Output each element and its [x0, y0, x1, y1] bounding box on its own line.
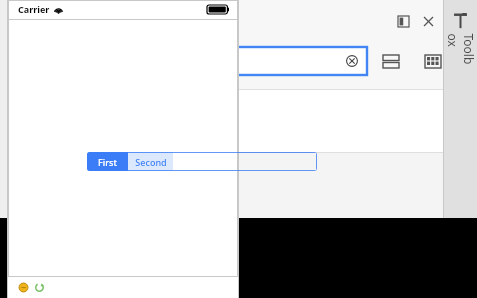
staticText: Carrier: [18, 3, 50, 15]
button[interactable]: Toolbox: [444, 0, 477, 218]
button[interactable]: Warnings: [17, 281, 29, 293]
button[interactable]: First: [87, 152, 128, 171]
button[interactable]: List view: [380, 50, 402, 72]
button[interactable]: Refresh: [33, 281, 45, 293]
staticText: Toolbox: [444, 33, 476, 66]
button[interactable]: Toggle panel: [395, 13, 411, 29]
button[interactable]: Clear search: [201, 47, 367, 75]
button[interactable]: Clear search: [344, 53, 360, 69]
staticText: Second: [135, 156, 167, 168]
staticText: First: [98, 156, 117, 168]
button[interactable]: Close: [420, 13, 436, 29]
button[interactable]: Second: [128, 152, 173, 171]
button[interactable]: Grid view: [422, 50, 444, 72]
